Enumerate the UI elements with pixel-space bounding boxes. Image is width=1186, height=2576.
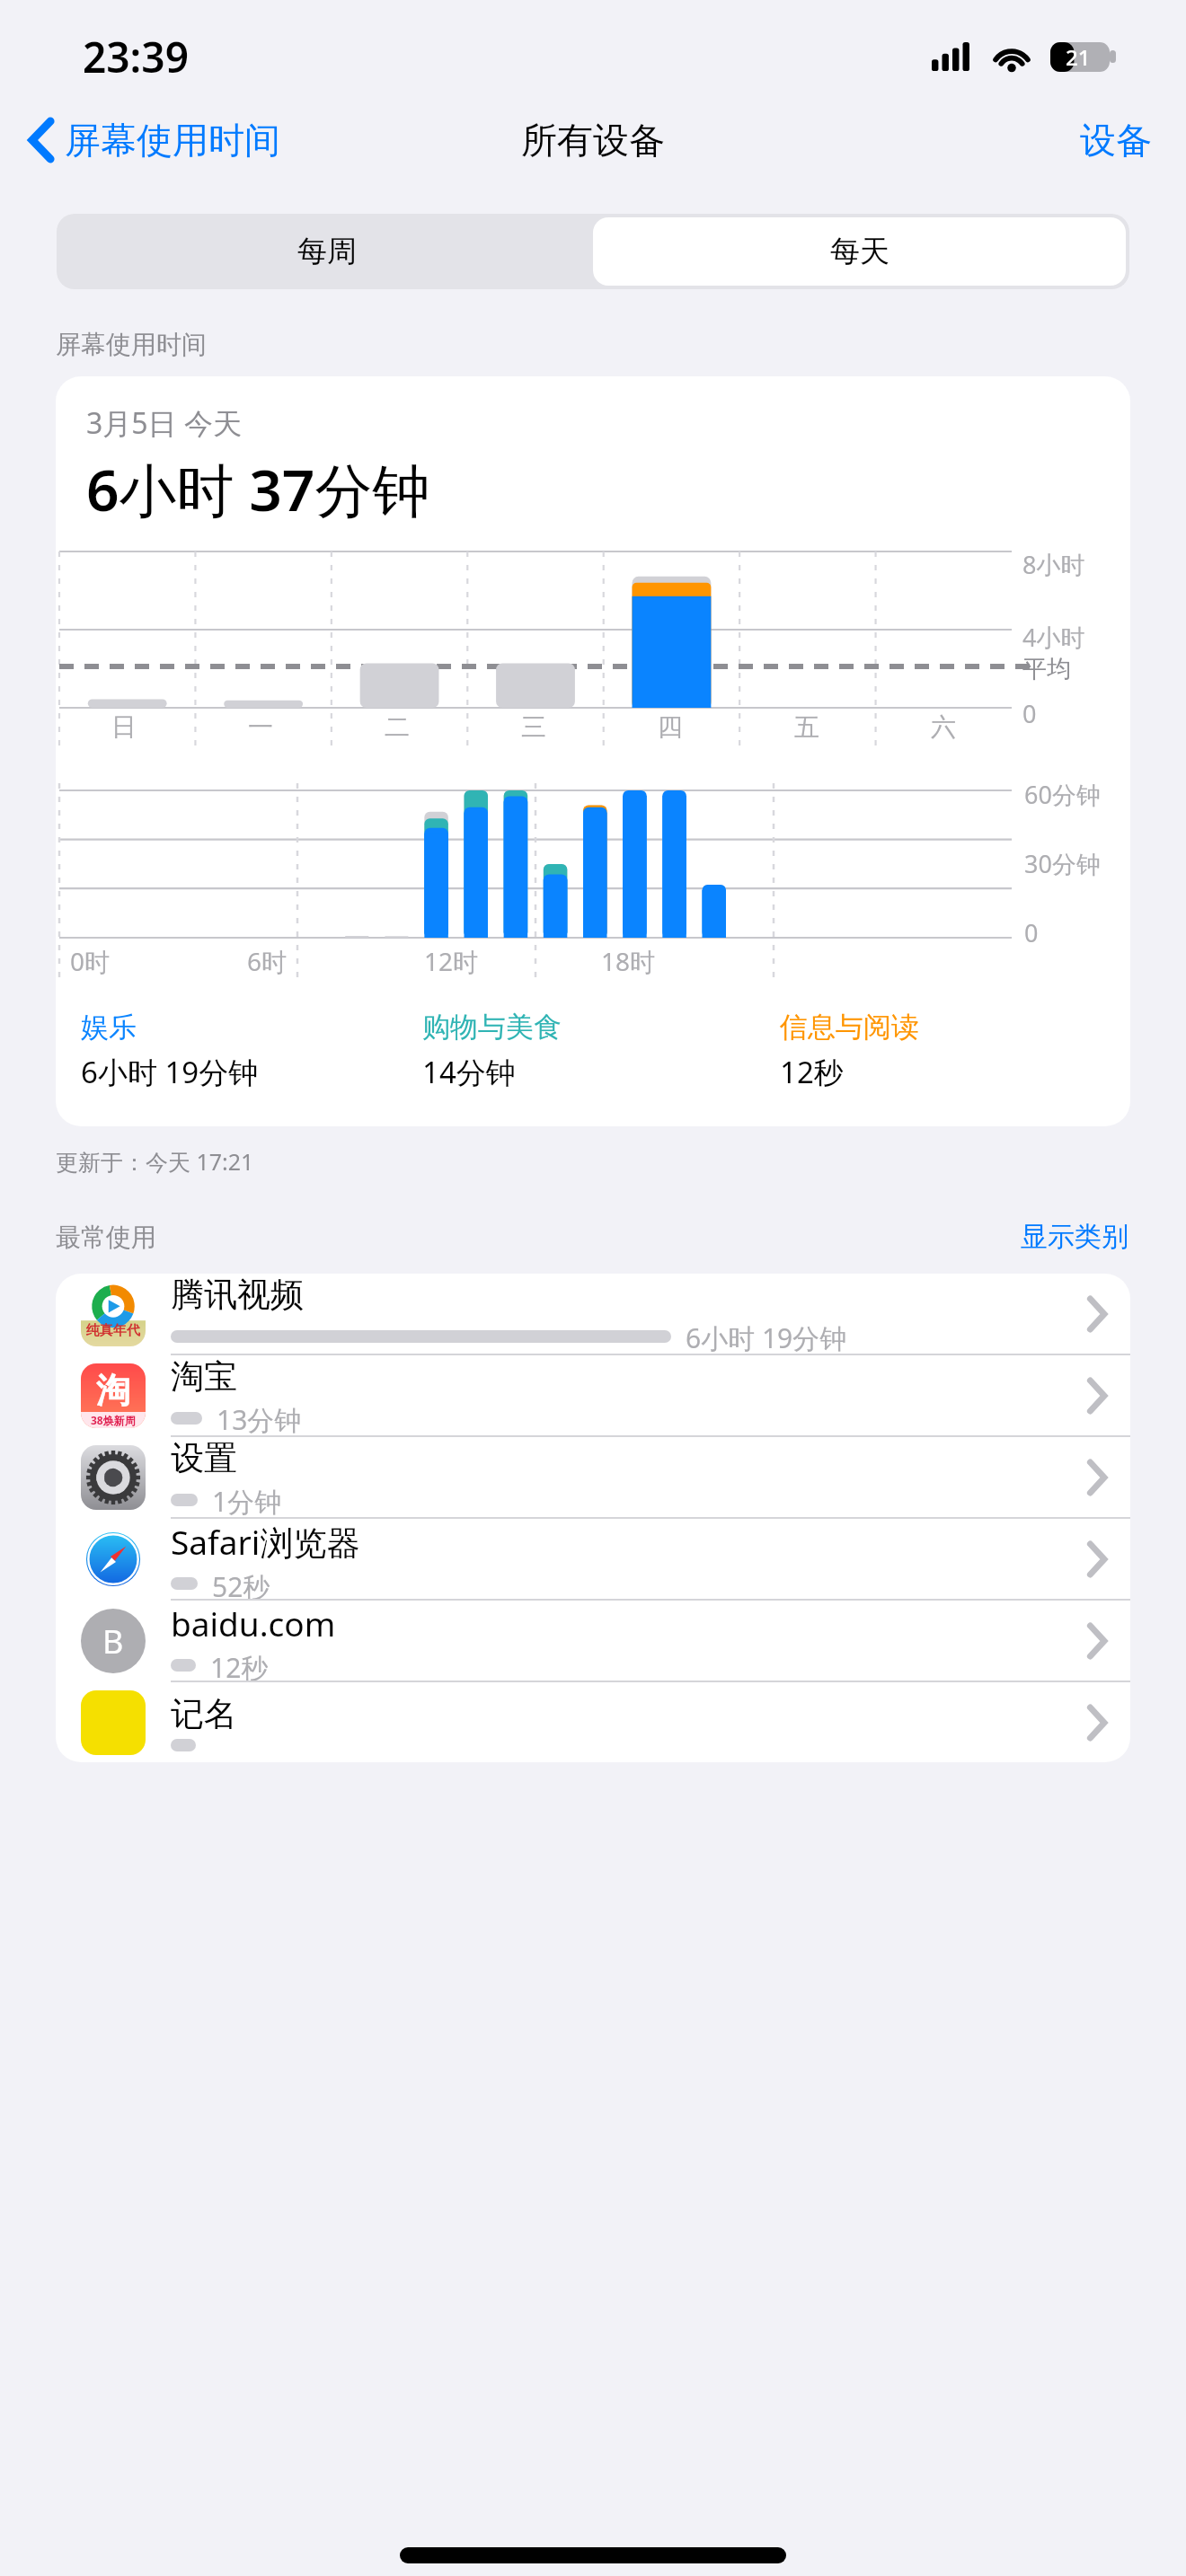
staticText: 信息与阅读 [780,1010,919,1045]
button[interactable]: 显示类别 [1015,1214,1134,1259]
staticText: Safari浏览器 [171,1519,360,1565]
button[interactable]: 每周 [60,217,593,286]
staticText: 12秒 [210,1649,269,1681]
staticText: 每周 [297,233,357,270]
staticText: 显示类别 [1021,1220,1128,1254]
staticText: B [102,1619,124,1663]
staticText: 12秒 [780,1052,844,1092]
staticText: 6小时 19分钟 [686,1319,847,1354]
staticText: 23:39 [83,29,189,85]
staticText: 最常使用 [56,1222,156,1253]
staticText: baidu.com [171,1601,336,1645]
staticText: 0 [1024,916,1039,949]
staticText: 日 [111,711,137,743]
button[interactable]: 记名 [56,1682,1130,1762]
staticText: 0时 [70,944,111,978]
staticText: 购物与美食 [422,1010,562,1045]
staticText: 一 [248,711,273,743]
staticText: 52秒 [212,1568,270,1599]
button[interactable]: 每天 [593,217,1126,286]
staticText: 6小时 37分钟 [86,450,430,528]
staticText: 屏幕使用时间 [56,329,207,360]
staticText: 60分钟 [1024,778,1101,811]
staticText: 21 [1066,42,1091,72]
button[interactable]: 纯真年代 [56,1274,1130,1354]
staticText: 3月5日 今天 [86,403,242,443]
staticText: 设置 [171,1437,237,1479]
staticText: 更新于：今天 17:21 [56,1146,254,1177]
button[interactable]: 屏幕使用时间 [0,109,293,172]
staticText: 0 [1022,697,1037,730]
staticText: 六 [931,711,956,743]
staticText: 6时 [247,944,288,978]
staticText: 四 [658,711,683,743]
staticText: 8小时 [1022,548,1085,581]
staticText: 设备 [1080,118,1152,163]
staticText: 4小时 [1022,621,1085,654]
staticText: 6小时 19分钟 [81,1052,259,1092]
staticText: 所有设备 [521,118,665,163]
staticText: 纯真年代 [86,1322,140,1339]
staticText: 五 [794,711,819,743]
button[interactable]: 淘 [56,1355,1130,1435]
staticText: 二 [385,711,410,743]
staticText: 三 [521,711,546,743]
staticText: 1分钟 [212,1483,282,1517]
staticText: 娱乐 [81,1010,137,1045]
staticText: 淘宝 [171,1355,237,1398]
staticText: 14分钟 [422,1052,516,1092]
staticText: 13分钟 [217,1401,302,1435]
staticText: 38焕新周 [91,1413,136,1427]
staticText: 18时 [601,944,656,978]
staticText: 腾讯视频 [171,1274,304,1316]
staticText: 平均 [1022,654,1071,684]
staticText: 淘 [96,1369,130,1412]
button[interactable]: 设置 [56,1437,1130,1517]
staticText: 每天 [830,233,889,270]
button[interactable]: 设备 [1046,107,1186,173]
button[interactable]: Safari浏览器 [56,1519,1130,1599]
staticText: 12时 [424,944,479,978]
staticText: 30分钟 [1024,847,1101,880]
staticText: 记名 [171,1693,237,1735]
staticText: 屏幕使用时间 [65,118,280,163]
button[interactable]: B [56,1601,1130,1681]
